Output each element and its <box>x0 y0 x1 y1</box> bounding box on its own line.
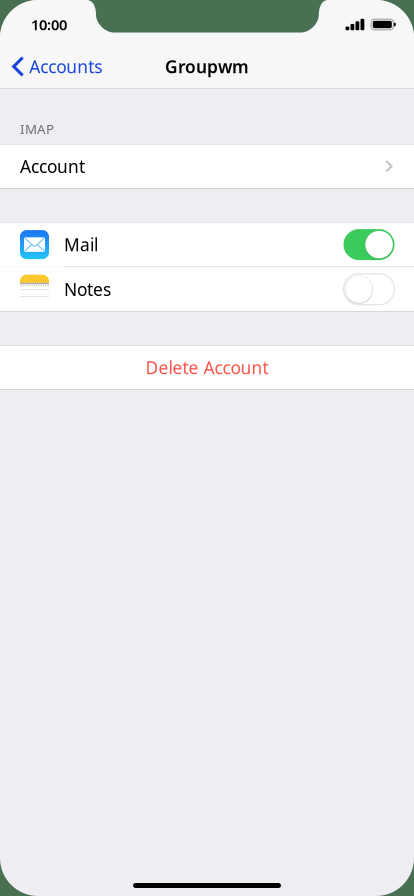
staticText: IMAP <box>20 120 54 138</box>
staticText: Groupwm <box>165 55 249 78</box>
button[interactable]: Notes <box>0 267 414 311</box>
button[interactable]: Mail <box>0 223 414 267</box>
staticText: 10:00 <box>31 15 67 34</box>
staticText: Delete Account <box>145 356 268 379</box>
button[interactable]: Account <box>0 145 414 188</box>
button[interactable]: Delete Account <box>0 346 414 389</box>
staticText: Account <box>20 155 85 178</box>
staticText: Accounts <box>29 55 102 78</box>
staticText: Mail <box>64 233 98 256</box>
button[interactable]: Accounts <box>0 44 112 89</box>
staticText: Notes <box>64 278 111 301</box>
